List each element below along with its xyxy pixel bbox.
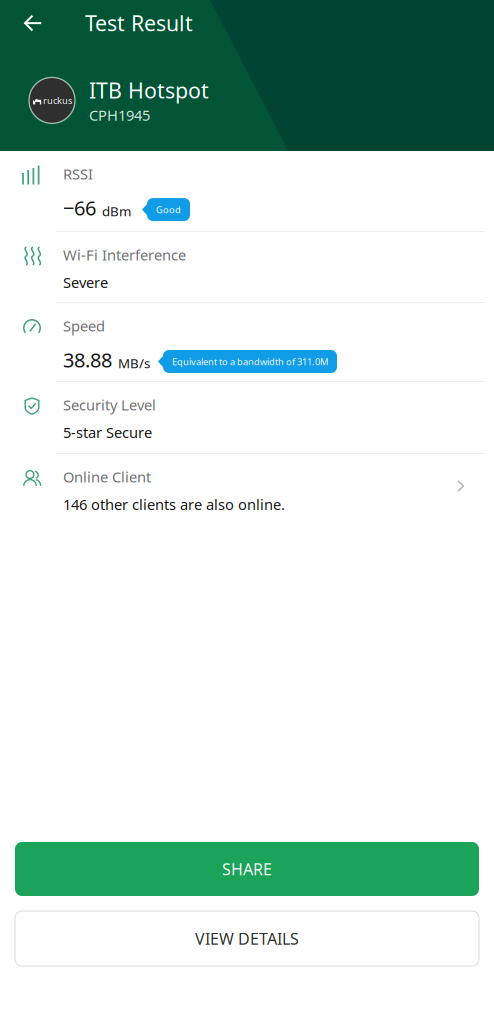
staticText: Equivalent to a bandwidth of 311.0M: [172, 355, 328, 368]
staticText: dBm: [102, 202, 131, 220]
staticText: Test Result: [85, 9, 193, 37]
staticText: RSSI: [63, 164, 93, 183]
staticText: Speed: [63, 316, 105, 335]
staticText: 146 other clients are also online.: [63, 494, 285, 514]
staticText: 5-star Secure: [63, 422, 152, 442]
staticText: ITB Hotspot: [89, 76, 209, 104]
staticText: Online Client: [63, 467, 151, 486]
staticText: 38.88: [63, 346, 112, 373]
staticText: Security Level: [63, 395, 156, 414]
staticText: −66: [63, 194, 96, 221]
staticText: MB/s: [118, 354, 150, 372]
button[interactable]: Back: [12, 0, 54, 46]
button[interactable]: SHARE: [15, 842, 479, 896]
staticText: VIEW DETAILS: [195, 928, 299, 949]
staticText: Severe: [63, 272, 108, 292]
staticText: Good: [156, 203, 181, 216]
staticText: Wi-Fi Interference: [63, 245, 186, 264]
staticText: ruckus: [43, 94, 72, 107]
staticText: SHARE: [222, 858, 272, 880]
staticText: CPH1945: [89, 105, 150, 125]
button[interactable]: VIEW DETAILS: [15, 911, 479, 966]
